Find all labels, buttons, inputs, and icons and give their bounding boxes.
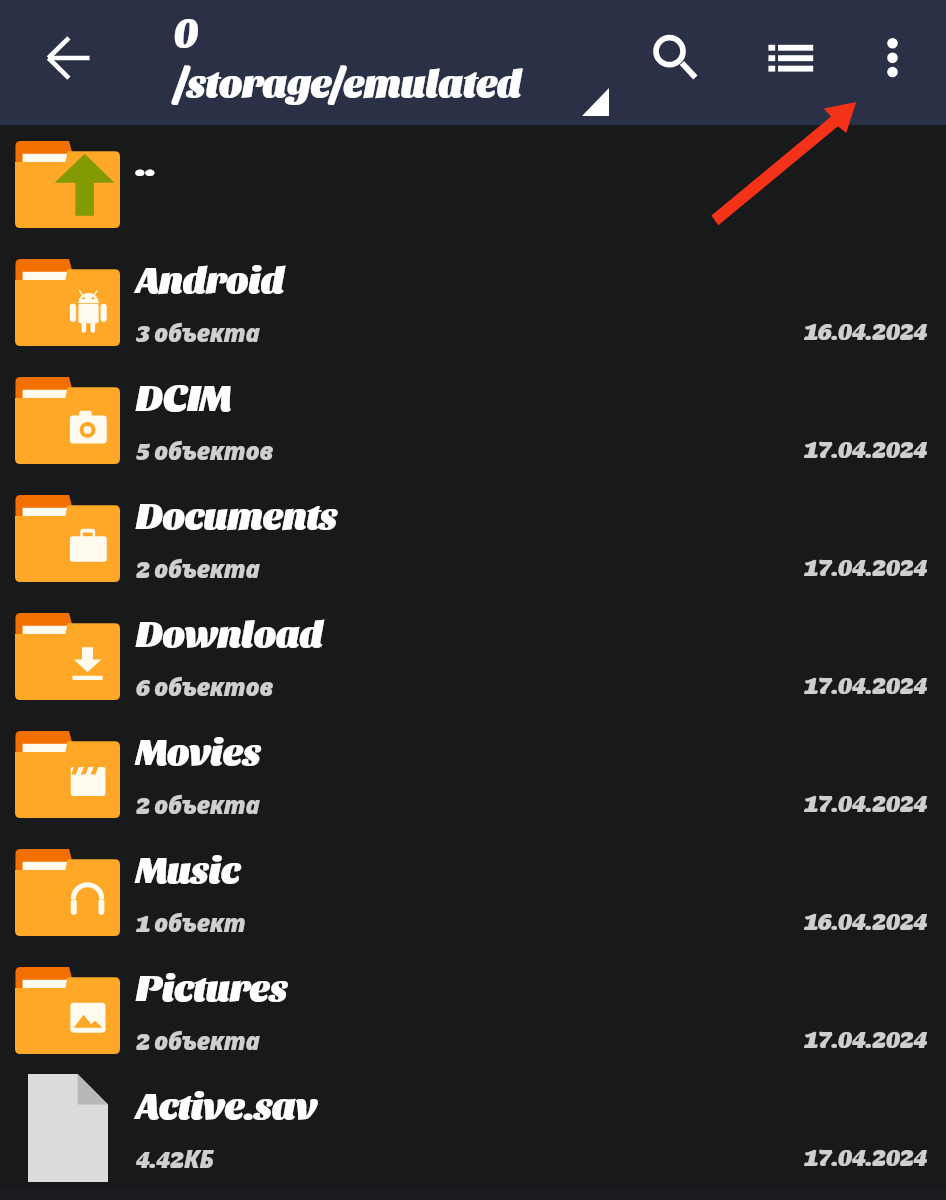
staticText: 17.04.2024 xyxy=(804,1142,928,1171)
button[interactable]: Movies xyxy=(0,715,946,833)
staticText: .. xyxy=(136,137,157,182)
staticText: 3 объекта xyxy=(136,316,260,349)
staticText: 4.42КБ xyxy=(136,1142,214,1175)
staticText: Music xyxy=(136,845,240,890)
staticText: 6 объектов xyxy=(136,670,274,703)
staticText: DCIM xyxy=(136,373,231,418)
staticText: 17.04.2024 xyxy=(804,670,928,699)
button[interactable]: More options xyxy=(846,0,946,125)
staticText: Documents xyxy=(136,491,338,536)
button[interactable]: Android xyxy=(0,243,946,361)
staticText: Movies xyxy=(136,727,261,772)
staticText: Download xyxy=(136,609,324,654)
button[interactable]: View mode xyxy=(736,0,846,125)
button[interactable]: Pictures xyxy=(0,951,946,1069)
staticText: 2 объекта xyxy=(136,1024,260,1057)
staticText: /storage/emulated xyxy=(175,57,522,104)
button[interactable]: DCIM xyxy=(0,361,946,479)
staticText: 2 объекта xyxy=(136,552,260,585)
staticText: 17.04.2024 xyxy=(804,1024,928,1053)
staticText: 17.04.2024 xyxy=(804,434,928,463)
staticText: 17.04.2024 xyxy=(804,552,928,581)
staticText: Active.sav xyxy=(136,1081,317,1126)
staticText: Pictures xyxy=(136,963,288,1008)
staticText: 2 объекта xyxy=(136,788,260,821)
staticText: 5 объектов xyxy=(136,434,274,467)
button[interactable]: Back xyxy=(0,0,125,125)
staticText: 16.04.2024 xyxy=(804,316,928,345)
staticText: 16.04.2024 xyxy=(804,906,928,935)
button[interactable]: Documents xyxy=(0,479,946,597)
staticText: 0 xyxy=(174,5,198,54)
staticText: Android xyxy=(136,255,285,300)
button[interactable]: Music xyxy=(0,833,946,951)
staticText: 17.04.2024 xyxy=(804,788,928,817)
button[interactable]: Active.sav xyxy=(0,1069,946,1187)
button[interactable]: Search xyxy=(614,0,725,125)
staticText: 1 объект xyxy=(136,906,246,939)
button[interactable]: .. xyxy=(0,125,946,243)
button[interactable]: Download xyxy=(0,597,946,715)
